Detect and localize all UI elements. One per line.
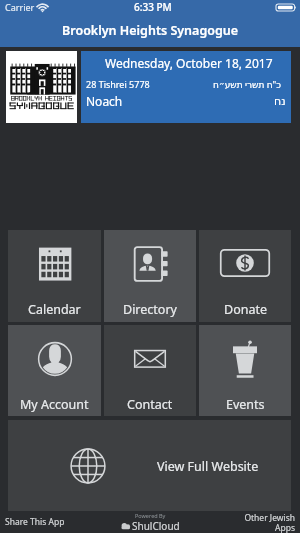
other: Wi-Fi [37,3,48,12]
staticText: Events [226,396,265,413]
button[interactable]: Events [199,325,291,416]
button[interactable]: Contact [104,325,196,416]
staticText: Carrier [5,1,35,13]
button[interactable]: Directory [104,230,196,322]
staticText: Donate [224,301,267,318]
staticText: ShulCloud [132,519,180,533]
button[interactable]: Calendar [8,230,101,322]
staticText: Wednesday, October 18, 2017 [105,55,273,71]
staticText: Contact [127,396,173,413]
button[interactable]: Brooklyn Heights Synagogue logo [6,51,77,123]
staticText: Other Jewish Apps [244,512,295,533]
button[interactable]: View Full Website [8,420,291,511]
staticText: Brooklyn Heights Synagogue [62,22,239,39]
staticText: כ"ח תשרי תשע״ח [213,78,281,90]
button[interactable]: Share This App [0,511,100,533]
staticText: Powered By [135,512,166,519]
staticText: נח [274,95,286,108]
button[interactable]: Powered by ShulCloud [100,511,200,533]
staticText: My Account [20,396,89,413]
staticText: Calendar [28,301,81,318]
staticText: Share This App [5,516,65,528]
button[interactable]: Other Jewish Apps [200,511,300,533]
button[interactable]: Donate [199,230,291,322]
staticText: 6:33 PM [134,0,172,14]
staticText: 28 Tishrei 5778 [86,78,150,90]
button[interactable]: Wednesday, October 18, 2017 [81,51,291,123]
other: Battery [276,4,296,11]
button[interactable]: My Account [8,325,101,416]
staticText: View Full Website [157,458,259,475]
staticText: Directory [123,301,177,318]
staticText: Noach [86,93,123,109]
